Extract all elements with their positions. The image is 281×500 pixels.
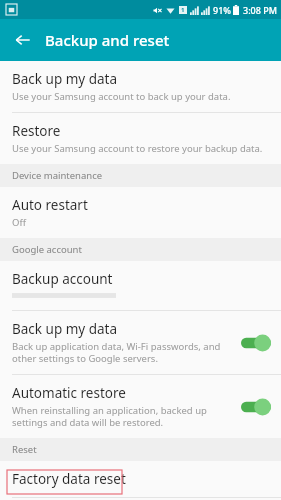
staticText: Device maintenance: [12, 169, 103, 182]
button[interactable]: Back: [8, 25, 38, 55]
button[interactable]: Toggle Automatic restore: [241, 397, 271, 417]
staticText: Google account: [12, 243, 82, 256]
button[interactable]: Back up my data: [0, 61, 281, 112]
button[interactable]: Back up my data: [0, 311, 281, 374]
staticText: Factory data reset: [12, 470, 126, 488]
staticText: Back up my data: [12, 70, 118, 88]
staticText: When reinstalling an application, backed…: [12, 404, 233, 429]
staticText: Restore: [12, 122, 61, 140]
button[interactable]: Automatic restore: [0, 375, 281, 438]
staticText: Back up my data: [12, 320, 118, 338]
staticText: Automatic restore: [12, 384, 126, 402]
staticText: Use your Samsung account to restore your…: [12, 142, 263, 155]
staticText: Use your Samsung account to back up your…: [12, 90, 231, 103]
staticText: Reset: [12, 443, 37, 456]
button[interactable]: Factory data reset: [0, 461, 281, 497]
staticText: Auto restart: [12, 196, 88, 214]
staticText: Backup and reset: [45, 30, 170, 50]
button[interactable]: Auto restart: [0, 187, 281, 238]
staticText: Off: [12, 216, 26, 229]
staticText: 91%: [213, 4, 231, 16]
button[interactable]: Backup account: [0, 261, 281, 310]
staticText: 1: [181, 6, 185, 14]
staticText: Backup account: [12, 270, 113, 288]
staticText: 3:08 PM: [243, 4, 277, 16]
staticText: Back up application data, Wi-Fi password…: [12, 340, 233, 365]
button[interactable]: Restore: [0, 113, 281, 164]
button[interactable]: Toggle Back up my data: [241, 333, 271, 353]
